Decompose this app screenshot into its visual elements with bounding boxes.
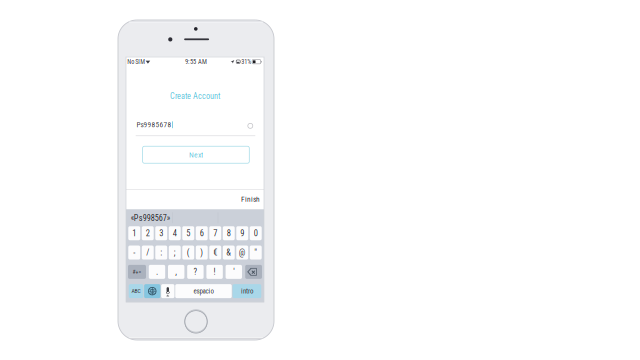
staticText: ! bbox=[214, 267, 216, 277]
staticText: & bbox=[226, 247, 231, 257]
button[interactable]: ) bbox=[196, 246, 208, 260]
staticText: 4 bbox=[173, 228, 177, 238]
staticText: 9:55 AM bbox=[185, 58, 207, 66]
button[interactable]: " bbox=[250, 246, 262, 260]
button[interactable]: Delete bbox=[245, 265, 262, 279]
button[interactable]: 9 bbox=[236, 226, 248, 240]
staticText: ) bbox=[200, 247, 203, 257]
button[interactable]: & bbox=[223, 246, 235, 260]
staticText: ABC bbox=[132, 288, 141, 294]
staticText: 5 bbox=[186, 228, 190, 238]
button[interactable]: 8 bbox=[223, 226, 235, 240]
staticText: . bbox=[156, 267, 158, 277]
button[interactable]: 6 bbox=[196, 226, 208, 240]
button[interactable]: intro bbox=[233, 284, 261, 298]
staticText: «Ps998567» bbox=[131, 213, 170, 223]
staticText: espacio bbox=[193, 287, 213, 295]
button[interactable]: 1 bbox=[128, 226, 140, 240]
staticText: No SIM bbox=[127, 58, 145, 66]
button[interactable]: Next keyboard bbox=[144, 284, 160, 298]
button[interactable]: ( bbox=[182, 246, 194, 260]
button[interactable]: 4 bbox=[169, 226, 181, 240]
staticText: 7 bbox=[213, 228, 217, 238]
button[interactable]: ; bbox=[169, 246, 181, 260]
button[interactable]: espacio bbox=[175, 284, 232, 298]
staticText: Ps9985678 bbox=[136, 120, 171, 129]
staticText: Finish bbox=[241, 195, 260, 204]
staticText: 0 bbox=[254, 228, 258, 238]
staticText: / bbox=[146, 247, 149, 257]
staticText: Create Account bbox=[170, 91, 220, 101]
staticText: #+= bbox=[132, 269, 141, 275]
staticText: ; bbox=[174, 247, 176, 257]
staticText: 2 bbox=[146, 228, 150, 238]
button[interactable]: 3 bbox=[155, 226, 167, 240]
staticText: 3 bbox=[159, 228, 163, 238]
staticText: " bbox=[254, 247, 257, 257]
staticText: 9 bbox=[240, 228, 244, 238]
button[interactable]: . bbox=[149, 265, 165, 279]
button[interactable]: 5 bbox=[182, 226, 194, 240]
button[interactable]: - bbox=[128, 246, 140, 260]
button[interactable]: : bbox=[155, 246, 167, 260]
staticText: 8 bbox=[227, 228, 231, 238]
button[interactable]: / bbox=[142, 246, 154, 260]
staticText: 31% bbox=[241, 58, 251, 65]
button[interactable]: Finish bbox=[234, 192, 260, 206]
button[interactable]: ABC bbox=[129, 284, 143, 298]
button[interactable]: 2 bbox=[142, 226, 154, 240]
staticText: 6 bbox=[200, 228, 204, 238]
button[interactable]: ! bbox=[206, 265, 223, 279]
staticText: ( bbox=[187, 247, 190, 257]
staticText: @ bbox=[239, 247, 246, 257]
staticText: Next bbox=[189, 150, 203, 159]
button[interactable]: Next bbox=[143, 146, 249, 163]
staticText: , bbox=[175, 267, 177, 277]
button[interactable]: Dictation bbox=[161, 284, 174, 298]
staticText: ' bbox=[233, 267, 234, 277]
button[interactable]: € bbox=[209, 246, 221, 260]
button[interactable]: ' bbox=[226, 265, 242, 279]
staticText: € bbox=[213, 247, 217, 257]
button[interactable]: #+= bbox=[128, 265, 146, 279]
button[interactable]: , bbox=[168, 265, 184, 279]
staticText: - bbox=[133, 247, 135, 257]
staticText: : bbox=[160, 247, 162, 257]
button[interactable]: Clear text bbox=[246, 122, 254, 130]
button[interactable]: ? bbox=[187, 265, 204, 279]
staticText: ? bbox=[193, 267, 197, 277]
staticText: intro bbox=[241, 287, 253, 295]
staticText: 1 bbox=[132, 228, 136, 238]
button[interactable]: 7 bbox=[209, 226, 221, 240]
button[interactable]: @ bbox=[236, 246, 248, 260]
button[interactable]: 0 bbox=[250, 226, 262, 240]
